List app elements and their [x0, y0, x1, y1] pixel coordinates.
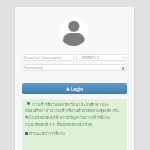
staticText: คำแนะนำการใช้งาน — [29, 130, 65, 136]
staticText: การเข้าใช้งานของนักเรียน ประถมศึกษา และ … — [25, 101, 119, 128]
button[interactable]: Login — [22, 83, 127, 94]
button[interactable]: คำแนะนำการใช้งาน — [25, 130, 65, 136]
button[interactable]: Email or Username — [22, 54, 74, 61]
staticText: สังกัด/ร.ร. — [82, 54, 101, 61]
button[interactable]: Password — [22, 64, 127, 71]
staticText: Login — [71, 86, 84, 92]
staticText: Email or Username — [24, 55, 62, 61]
staticText: Password — [24, 65, 43, 71]
button[interactable]: สังกัด/ร.ร. — [76, 54, 127, 61]
